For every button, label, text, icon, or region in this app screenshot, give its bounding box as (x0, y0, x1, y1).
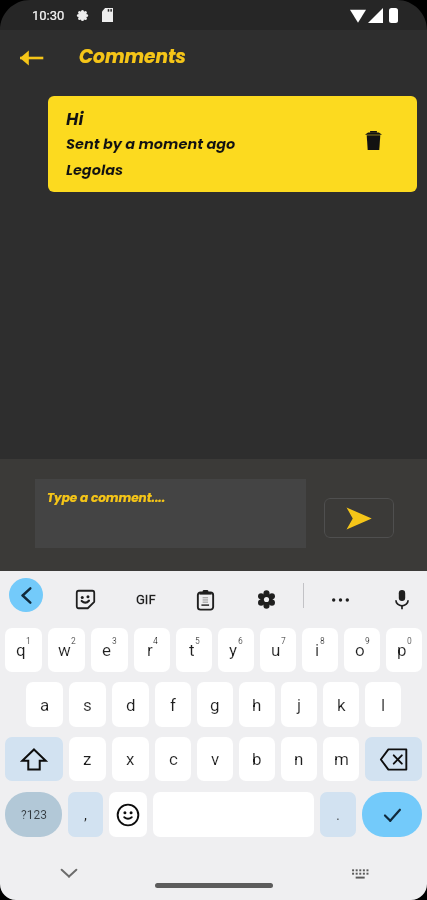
button[interactable]: l (365, 682, 401, 727)
button[interactable]: More options (325, 571, 355, 628)
button[interactable]: Stickers (70, 571, 100, 628)
staticText: 0 (407, 636, 412, 646)
button[interactable]: Voice input (387, 571, 417, 628)
staticText: t (189, 640, 195, 660)
button[interactable]: Enter (362, 792, 422, 837)
staticText: d (126, 695, 136, 715)
button[interactable]: t (176, 628, 212, 672)
staticText: 10:30 (32, 8, 65, 23)
button[interactable] (5, 737, 63, 781)
button[interactable]: Hide keyboard (54, 858, 84, 888)
button[interactable]: x (112, 737, 149, 781)
button[interactable]: Back (11, 38, 51, 78)
staticText: 2 (71, 636, 76, 646)
button[interactable]: h (239, 682, 275, 727)
staticText: s (83, 695, 92, 715)
button[interactable]: ?123 (5, 792, 62, 837)
button[interactable]: j (281, 682, 317, 727)
button[interactable]: v (197, 737, 233, 781)
button[interactable]: z (69, 737, 106, 781)
button[interactable]: GIF (130, 571, 162, 628)
button[interactable]: g (197, 682, 233, 727)
staticText: a (40, 695, 50, 715)
staticText: , (84, 806, 87, 824)
button[interactable]: d (112, 682, 149, 727)
button[interactable]: u (260, 628, 296, 672)
staticText: c (169, 749, 178, 769)
staticText: Legolas (66, 160, 124, 180)
button[interactable]: Delete comment (355, 122, 391, 158)
button[interactable]: p (386, 628, 422, 672)
staticText: GIF (136, 592, 156, 607)
button[interactable]: Keyboard settings (251, 571, 281, 628)
staticText: j (297, 695, 302, 715)
staticText: 8 (320, 636, 325, 646)
button[interactable]: y (218, 628, 254, 672)
button[interactable]: m (323, 737, 359, 781)
button[interactable] (109, 792, 147, 837)
button[interactable]: Switch keyboard (346, 862, 373, 884)
button[interactable]: n (281, 737, 317, 781)
staticText: Sent by a moment ago (66, 134, 236, 154)
staticText: 3 (112, 636, 117, 646)
button[interactable]: f (155, 682, 191, 727)
staticText: Comments (79, 44, 186, 70)
staticText: v (211, 749, 220, 769)
staticText: u (271, 640, 281, 660)
staticText: y (229, 640, 238, 660)
staticText: h (252, 695, 262, 715)
staticText: e (102, 640, 112, 660)
staticText: 1 (26, 636, 31, 646)
staticText: n (294, 749, 304, 769)
staticText: ?123 (21, 808, 47, 822)
staticText: f (170, 695, 176, 715)
button[interactable]: , (68, 792, 103, 837)
button[interactable]: Type a comment.... (35, 479, 306, 548)
staticText: b (252, 749, 262, 769)
staticText: q (16, 640, 26, 660)
staticText: w (58, 640, 71, 660)
button[interactable]: . (320, 792, 356, 837)
staticText: 9 (365, 636, 370, 646)
staticText: Type a comment.... (47, 489, 166, 506)
staticText: 6 (238, 636, 243, 646)
button[interactable]: q (5, 628, 42, 672)
staticText: 5 (195, 636, 200, 646)
button[interactable]: Clipboard (190, 571, 220, 628)
button[interactable]: c (155, 737, 191, 781)
staticText: x (126, 749, 135, 769)
button[interactable]: Send comment (324, 498, 394, 538)
staticText: 7 (281, 636, 286, 646)
button[interactable]: r (134, 628, 170, 672)
staticText: . (336, 806, 340, 824)
staticText: g (210, 695, 220, 715)
button[interactable]: w (48, 628, 85, 672)
button[interactable]: o (344, 628, 380, 672)
button[interactable]: s (69, 682, 106, 727)
staticText: Hi (66, 107, 84, 131)
staticText: o (355, 640, 365, 660)
staticText: l (381, 695, 386, 715)
button[interactable]: b (239, 737, 275, 781)
button[interactable]: Hi (48, 96, 417, 192)
button[interactable] (365, 737, 422, 781)
staticText: i (315, 640, 320, 660)
button[interactable]: a (26, 682, 63, 727)
staticText: m (334, 749, 349, 769)
button[interactable]: i (302, 628, 338, 672)
button[interactable]: Back (9, 578, 43, 612)
button[interactable]: e (91, 628, 128, 672)
staticText: k (337, 695, 346, 715)
staticText: p (397, 640, 407, 660)
staticText: r (147, 640, 153, 660)
staticText: 4 (153, 636, 158, 646)
button[interactable]: k (323, 682, 359, 727)
staticText: z (83, 749, 92, 769)
